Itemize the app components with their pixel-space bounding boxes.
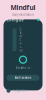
staticText: Today 12m [12, 89, 26, 92]
staticText: Energize [6, 17, 23, 22]
staticText: Start session [14, 76, 31, 79]
staticText: Mindful [10, 3, 35, 12]
staticText: Calm focus [19, 27, 22, 52]
staticText: Breathe in [15, 66, 30, 70]
staticText: Daily meditation [12, 13, 34, 16]
